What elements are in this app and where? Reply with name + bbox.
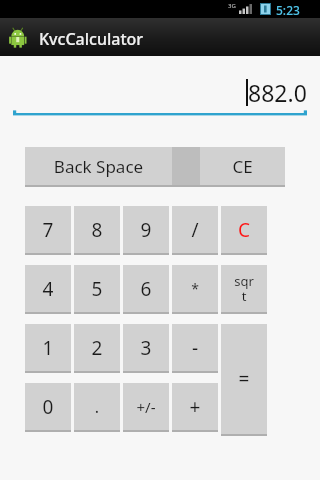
staticText: 5 [74,276,120,302]
staticText: = [221,366,267,392]
button[interactable]: * [172,265,218,314]
button[interactable]: sqrt [221,265,267,314]
other: App icon [9,27,30,48]
staticText: 7 [25,217,71,243]
staticText: 3 [123,335,169,361]
staticText: 0 [25,394,71,420]
staticText: . [74,396,120,418]
staticText: CE [200,155,285,178]
staticText: 2 [74,335,120,361]
button[interactable]: 4 [25,265,71,314]
staticText: 5:23 [276,2,300,18]
staticText: C [221,217,267,243]
button[interactable]: 3 [123,324,169,373]
button[interactable]: +/- [123,383,169,432]
staticText: 882.0 [248,77,307,108]
staticText: KvcCalculator [39,28,144,50]
staticText: 4 [25,276,71,302]
staticText: 6 [123,276,169,302]
button[interactable]: 1 [25,324,71,373]
button[interactable]: . [74,383,120,432]
button[interactable]: 0 [25,383,71,432]
button[interactable]: / [172,206,218,255]
button[interactable]: 2 [74,324,120,373]
staticText: 9 [123,217,169,243]
button[interactable]: 9 [123,206,169,255]
button[interactable]: - [172,324,218,373]
button[interactable]: = [221,324,267,436]
button[interactable]: 6 [123,265,169,314]
button[interactable]: 882.0 [13,74,307,110]
button[interactable]: C [221,206,267,255]
staticText: +/- [123,397,169,417]
button[interactable]: 5 [74,265,120,314]
staticText: 3G [228,2,236,10]
staticText: * [172,279,218,298]
staticText: 8 [74,217,120,243]
button[interactable]: Back Space [25,147,172,187]
staticText: sqrt [233,272,255,305]
staticText: + [172,394,218,420]
button[interactable]: 7 [25,206,71,255]
staticText: / [172,217,218,243]
button[interactable]: + [172,383,218,432]
staticText: Back Space [25,155,172,178]
button[interactable]: CE [200,147,285,187]
button[interactable] [172,147,200,187]
staticText: - [172,335,218,361]
staticText: 1 [25,335,71,361]
button[interactable]: 8 [74,206,120,255]
